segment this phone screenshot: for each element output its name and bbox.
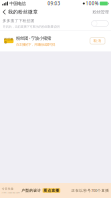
button[interactable]: 取消 [90, 38, 105, 44]
staticText: 我的粉丝微章 [8, 9, 38, 15]
staticText: 粉丝团 · 宁波小猪猪 [16, 35, 51, 41]
button[interactable]: 返回 [0, 7, 8, 17]
staticText: 100% [86, 0, 99, 6]
staticText: 开启后，当前直播下可展示的粉丝数量说明 [3, 25, 60, 29]
staticText: jinri.toutiao.com [2, 191, 20, 194]
staticText: 在主播的下，开通粉丝团可得 [16, 42, 55, 47]
staticText: 粉丝管理 [92, 9, 108, 15]
staticText: 看点直播 [43, 188, 59, 193]
staticText: 正在以秒号700个直播 [71, 188, 109, 193]
button[interactable]: 开关 [91, 20, 108, 26]
button[interactable]: 粉丝管理 [92, 7, 111, 17]
staticText: 粉丝微章 [4, 37, 13, 44]
staticText: 取消 [93, 39, 101, 43]
staticText: 今日头条 [2, 187, 14, 190]
staticText: 户型的设计 [21, 188, 41, 193]
staticText: 中国电信 [9, 1, 25, 6]
staticText: 09:03 [48, 0, 61, 6]
staticText: 多多搜了下粉丝团 [3, 18, 35, 23]
